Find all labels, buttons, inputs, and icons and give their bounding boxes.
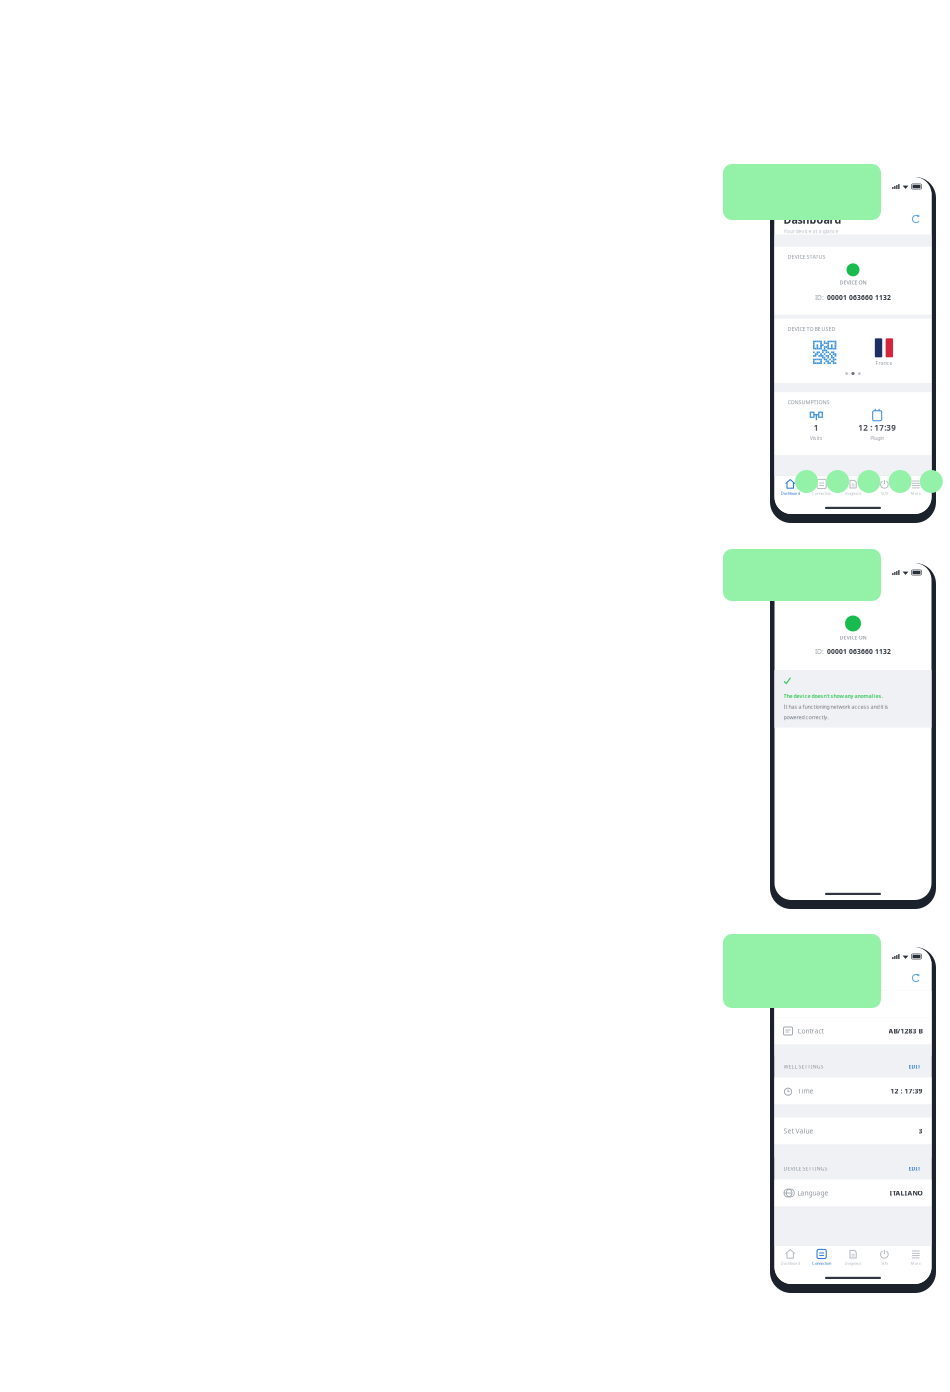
button[interactable]: Refresh [909,212,922,225]
button[interactable]: Dashboard [774,476,806,499]
staticText: CONSUMPTIONS [787,399,829,406]
staticText: DEVICE STATUS [787,253,825,260]
staticText: France [875,359,892,366]
staticText: Connection [812,1260,831,1266]
button[interactable]: Diagnosis [837,476,869,499]
button[interactable]: Edit [906,1061,922,1072]
staticText: SOS [881,490,888,496]
staticText: Visits [810,434,823,441]
button[interactable]: Set Value [774,1117,931,1144]
staticText: Your device at a glance [783,228,838,235]
staticText: EDIT [908,1063,920,1070]
staticText: DEVICE ON [839,634,866,641]
staticText: Dashboard [783,212,841,227]
staticText: Plugin [870,434,884,441]
staticText: SOS [881,1260,888,1266]
staticText: Set Value [783,1127,813,1135]
staticText: 1 [814,422,819,433]
staticText: EDIT [908,1165,920,1172]
button[interactable]: Language [774,1179,931,1206]
staticText: ID: [815,293,824,302]
staticText: Dashboard [781,490,800,496]
button[interactable]: Connection [806,1246,837,1269]
staticText: The device doesn't show any anomalies. [783,692,882,699]
staticText: Connection [812,490,831,496]
staticText: Language [797,1189,828,1197]
staticText: Diagnosis [844,490,861,496]
staticText: WELL SETTINGS [783,1063,823,1070]
staticText: AB/1283 B [888,1027,922,1035]
staticText: ITALIANO [889,1189,922,1197]
button[interactable]: SOS [869,476,900,499]
staticText: 12 : 17:39 [858,422,896,433]
staticText: More [911,490,921,496]
staticText: 00001 063660 1132 [827,647,891,656]
button[interactable]: Dashboard [774,1246,806,1269]
staticText: DEVICE ON [839,279,866,286]
staticText: DEVICE SETTINGS [783,1165,827,1172]
button[interactable]: More [900,476,931,499]
staticText: Diagnosis [844,1260,861,1266]
button[interactable]: SOS [869,1246,900,1269]
staticText: DEVICE TO BE USED [787,325,835,332]
staticText: powered correctly. [783,714,828,721]
button[interactable]: Time [774,1077,931,1104]
staticText: Dashboard [781,1260,800,1266]
staticText: Contract [797,1027,823,1035]
staticText: Time [797,1087,813,1095]
button[interactable]: Connection [806,476,837,499]
staticText: More [911,1260,921,1266]
button[interactable]: More [900,1246,931,1269]
button[interactable]: Refresh [909,971,922,984]
staticText: It has a functioning network access and … [783,703,888,710]
staticText: 3 [918,1127,922,1135]
staticText: 12 : 17:39 [890,1087,922,1095]
button[interactable]: Edit [906,1163,922,1174]
staticText: 00001 063660 1132 [827,293,891,302]
button[interactable]: Diagnosis [837,1246,869,1269]
button[interactable]: Contract [774,1017,931,1044]
staticText: ID: [815,647,824,656]
